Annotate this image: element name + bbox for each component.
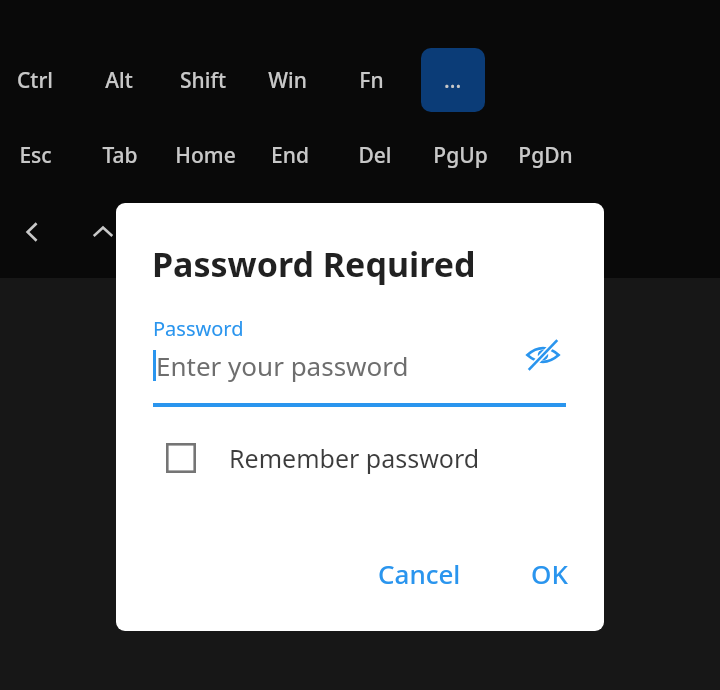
staticText: PgDn (518, 141, 573, 170)
button[interactable]: Home (163, 129, 247, 181)
button[interactable]: Ctrl (0, 54, 77, 106)
staticText: OK (531, 556, 568, 591)
staticText: Fn (359, 66, 384, 95)
button[interactable]: Fn (329, 54, 413, 106)
staticText: Del (358, 141, 392, 170)
staticText: Win (268, 66, 307, 95)
button[interactable]: PgDn (503, 129, 587, 181)
staticText: Esc (19, 141, 52, 170)
button[interactable]: Win (245, 54, 329, 106)
staticText: PgUp (433, 141, 488, 170)
staticText: Remember password (229, 441, 480, 475)
button[interactable]: Alt (77, 54, 161, 106)
button[interactable]: Toggle password visibility (520, 332, 566, 378)
staticText: Enter your password (156, 348, 409, 383)
button[interactable]: Esc (0, 129, 77, 181)
staticText: Shift (180, 66, 226, 95)
button[interactable]: Cancel (364, 546, 475, 601)
staticText: Password Required (152, 241, 476, 287)
staticText: Cancel (378, 556, 461, 591)
button[interactable]: OK (517, 546, 582, 601)
staticText: ... (444, 66, 462, 95)
staticText: End (271, 141, 309, 170)
staticText: Password (153, 315, 244, 342)
staticText: Alt (105, 66, 133, 95)
button[interactable]: End (248, 129, 332, 181)
button[interactable]: PgUp (418, 129, 502, 181)
button[interactable]: Tab (78, 129, 162, 181)
staticText: Tab (102, 141, 138, 170)
button[interactable]: Up (67, 206, 139, 258)
button[interactable]: ... (421, 48, 485, 112)
button[interactable]: Password (153, 315, 566, 403)
button[interactable]: Remember password (166, 435, 480, 481)
button[interactable]: Del (333, 129, 417, 181)
button[interactable]: Left (0, 206, 68, 258)
staticText: Home (175, 141, 236, 170)
staticText: Ctrl (17, 66, 53, 95)
button[interactable]: Shift (161, 54, 245, 106)
